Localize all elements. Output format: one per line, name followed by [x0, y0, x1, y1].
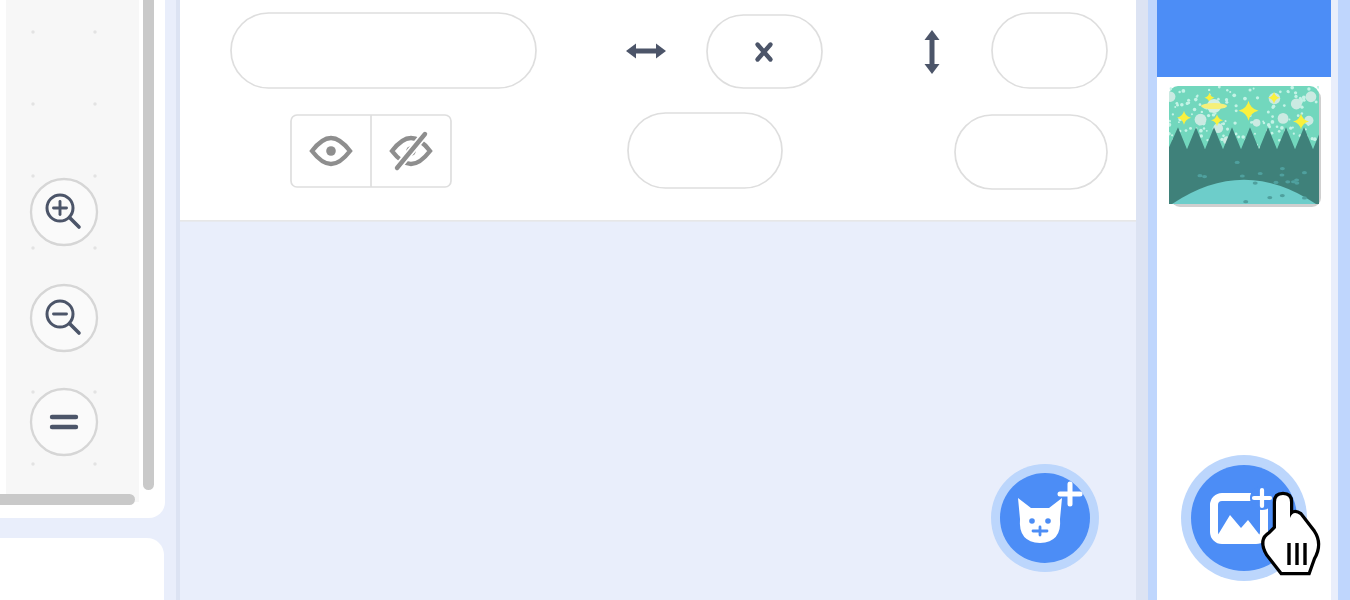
button[interactable]: X value	[707, 15, 822, 88]
button[interactable]: Sprite name	[231, 13, 536, 88]
button[interactable]: Zoom out	[64, 286, 130, 352]
button[interactable]: Reset zoom	[64, 390, 130, 456]
button[interactable]: Hide sprite	[371, 115, 451, 187]
button[interactable]: Show sprite	[291, 115, 371, 187]
button[interactable]: Backdrop 1	[1169, 86, 1319, 204]
button[interactable]: Choose a backdrop	[1181, 455, 1307, 581]
button[interactable]: Zoom in	[64, 180, 130, 246]
button[interactable]: Size value	[628, 113, 782, 188]
button[interactable]: Y value	[992, 13, 1107, 88]
button[interactable]: Choose a sprite	[991, 464, 1099, 572]
button[interactable]: Direction value	[955, 115, 1107, 189]
